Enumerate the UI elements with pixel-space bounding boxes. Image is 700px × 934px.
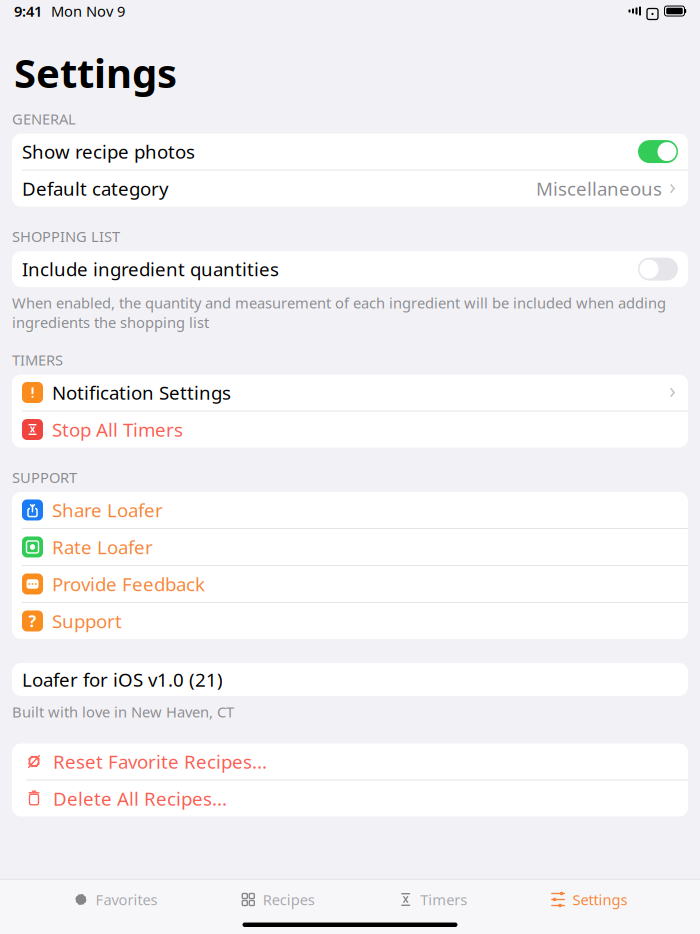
staticText: Loafer for iOS v1.0 (21) [22, 667, 223, 692]
staticText: Show recipe photos [22, 139, 195, 164]
button[interactable]: Reset Favorite Recipes... [12, 743, 688, 779]
button[interactable]: Rate Loafer [12, 529, 688, 565]
button[interactable]: Share Loafer [12, 492, 688, 528]
button[interactable]: Recipes [230, 879, 325, 919]
staticText: Built with love in New Haven, CT [12, 702, 234, 721]
staticText: 9:41 [14, 1, 42, 21]
staticText: Settings [14, 46, 177, 99]
staticText: GENERAL [12, 109, 76, 129]
staticText: When enabled, the quantity and measureme… [12, 293, 666, 332]
staticText: Stop All Timers [52, 417, 183, 442]
button[interactable]: Default category [12, 171, 688, 207]
staticText: SUPPORT [12, 467, 77, 487]
button[interactable]: Favorites [62, 879, 167, 919]
staticText: Notification Settings [52, 380, 231, 405]
staticText: Include ingredient quantities [22, 257, 279, 281]
staticText: Delete All Recipes... [53, 786, 227, 811]
staticText: Favorites [95, 890, 157, 909]
button[interactable]: Timers [387, 879, 477, 919]
button[interactable]: Delete All Recipes... [12, 780, 688, 816]
button[interactable]: Show recipe photos [12, 134, 688, 170]
staticText: TIMERS [12, 350, 63, 369]
staticText: Recipes [263, 890, 315, 909]
staticText: Settings [573, 890, 628, 909]
staticText: Mon Nov 9 [51, 1, 125, 21]
staticText: Reset Favorite Recipes... [53, 749, 267, 774]
button[interactable]: Stop All Timers [12, 411, 688, 447]
button[interactable]: Provide Feedback [12, 566, 688, 602]
staticText: Support [52, 609, 122, 633]
staticText: Provide Feedback [52, 572, 205, 596]
button[interactable]: Notification Settings [12, 374, 688, 410]
staticText: Rate Loafer [52, 535, 153, 559]
staticText: Timers [420, 890, 467, 909]
staticText: Share Loafer [52, 498, 163, 522]
button[interactable]: Include ingredient quantities [12, 251, 688, 287]
button[interactable]: Settings [540, 879, 638, 919]
button[interactable]: ? [12, 603, 688, 639]
staticText: Miscellaneous [536, 176, 662, 201]
staticText: Default category [22, 176, 169, 201]
staticText: ? [28, 610, 36, 632]
staticText: SHOPPING LIST [12, 227, 120, 246]
